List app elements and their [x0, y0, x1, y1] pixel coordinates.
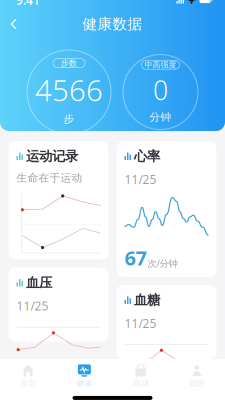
- staticText: 运动记录: [26, 148, 78, 164]
- button[interactable]: 心率: [116, 141, 216, 277]
- staticText: 11/25: [124, 171, 156, 187]
- staticText: 首页: [20, 378, 36, 388]
- staticText: 次/分钟: [147, 257, 177, 269]
- button[interactable]: 血糖: [116, 285, 216, 359]
- staticText: 心率: [134, 148, 160, 164]
- staticText: 4566: [35, 70, 103, 109]
- staticText: 步数: [61, 58, 77, 68]
- staticText: 健康: [76, 378, 92, 388]
- staticText: 67: [124, 244, 146, 271]
- staticText: 我的: [189, 378, 205, 388]
- staticText: 商城: [133, 378, 149, 388]
- staticText: 中高强度: [144, 60, 176, 70]
- button[interactable]: 商城: [112, 362, 169, 390]
- button[interactable]: 返回: [5, 13, 22, 34]
- staticText: 生命在于运动: [16, 171, 82, 184]
- staticText: 11/25: [16, 298, 48, 314]
- button[interactable]: 首页: [0, 362, 56, 390]
- staticText: 步: [63, 112, 74, 126]
- staticText: 11/25: [124, 315, 156, 331]
- staticText: 0: [153, 72, 168, 108]
- staticText: 9:41: [16, 0, 40, 8]
- staticText: 血糖: [134, 292, 160, 308]
- staticText: 血压: [26, 274, 52, 291]
- button[interactable]: 血压: [8, 267, 108, 341]
- button[interactable]: 健康: [56, 362, 112, 390]
- button[interactable]: 运动记录: [8, 141, 108, 260]
- staticText: 健康数据: [82, 15, 142, 33]
- button[interactable]: 我的: [169, 362, 225, 390]
- staticText: 分钟: [149, 111, 171, 124]
